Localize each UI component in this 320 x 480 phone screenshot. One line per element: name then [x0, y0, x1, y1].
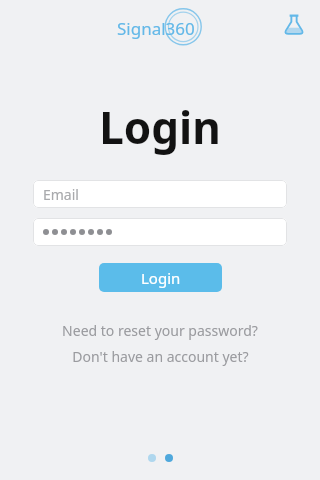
staticText: Need to reset your password? [62, 321, 258, 340]
button[interactable]: Page 2 [165, 454, 173, 462]
staticText: Login [141, 268, 181, 288]
button[interactable]: Password [33, 218, 287, 246]
button[interactable]: Page 1 [148, 454, 156, 462]
button[interactable]: Don't have an account yet? [0, 347, 320, 366]
staticText: Login [99, 97, 221, 157]
button[interactable]: Login [99, 263, 222, 292]
button[interactable]: Lab / test settings [278, 8, 310, 40]
button[interactable]: Need to reset your password? [0, 321, 320, 340]
staticText: Email [43, 185, 79, 204]
button[interactable]: Signal360 [117, 8, 203, 48]
button[interactable]: Email [33, 180, 287, 208]
staticText: Don't have an account yet? [72, 347, 249, 366]
staticText: Signal360 [117, 17, 195, 40]
